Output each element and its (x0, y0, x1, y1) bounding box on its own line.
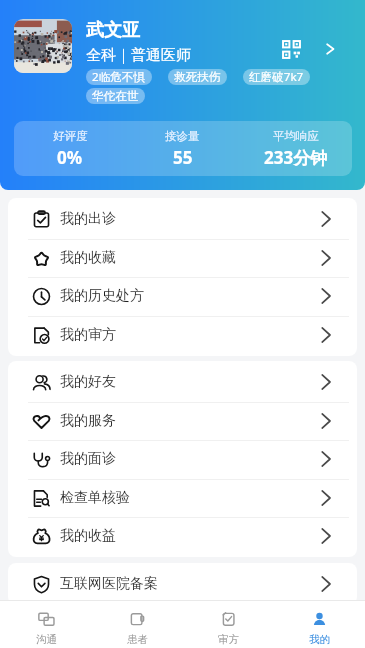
button[interactable]: 检查单核验 (8, 479, 357, 517)
staticText: 我的收藏 (60, 249, 116, 267)
button[interactable]: Profile details (318, 37, 342, 61)
button[interactable]: 我的审方 (8, 316, 357, 354)
button[interactable]: QR code (279, 37, 303, 61)
button[interactable]: 我的面诊 (8, 440, 357, 478)
button[interactable]: Avatar (14, 19, 72, 73)
staticText: 我的好友 (60, 373, 116, 391)
button[interactable]: 我的 (274, 602, 365, 647)
staticText: 我的收益 (60, 527, 116, 545)
staticText: 救死扶伤 (174, 70, 221, 85)
button[interactable]: 我的收藏 (8, 239, 357, 277)
staticText: 平均响应 (273, 129, 319, 143)
button[interactable]: 患者 (92, 602, 183, 647)
staticText: 我的面诊 (60, 450, 116, 468)
staticText: 我的出诊 (60, 210, 116, 228)
staticText: 我的审方 (60, 326, 116, 344)
button[interactable]: 我的服务 (8, 402, 357, 440)
staticText: 接诊量 (165, 129, 200, 143)
button[interactable]: 我的出诊 (8, 200, 357, 238)
staticText: 患者 (127, 633, 148, 646)
staticText: 红磨破7k7 (249, 69, 304, 85)
button[interactable]: 我的收益 (8, 517, 357, 555)
staticText: 我的服务 (60, 412, 116, 430)
staticText: 我的历史处方 (60, 287, 144, 305)
staticText: 233分钟 (264, 146, 328, 169)
staticText: 华佗在世 (92, 89, 139, 104)
staticText: 互联网医院备案 (60, 575, 158, 593)
staticText: 武文亚 (86, 19, 140, 42)
staticText: 全科｜普通医师 (86, 46, 191, 65)
button[interactable]: 沟通 (0, 602, 92, 647)
staticText: 0% (57, 146, 83, 169)
staticText: 好评度 (53, 129, 88, 143)
button[interactable]: 互联网医院备案 (8, 565, 357, 603)
button[interactable]: 我的历史处方 (8, 277, 357, 315)
staticText: 审方 (218, 633, 239, 646)
staticText: 2临危不惧 (92, 69, 146, 85)
staticText: 检查单核验 (60, 489, 130, 507)
button[interactable]: 我的好友 (8, 363, 357, 401)
button[interactable]: 审方 (183, 602, 274, 647)
staticText: 沟通 (36, 633, 57, 646)
staticText: 我的 (309, 633, 330, 646)
staticText: 55 (173, 146, 193, 169)
